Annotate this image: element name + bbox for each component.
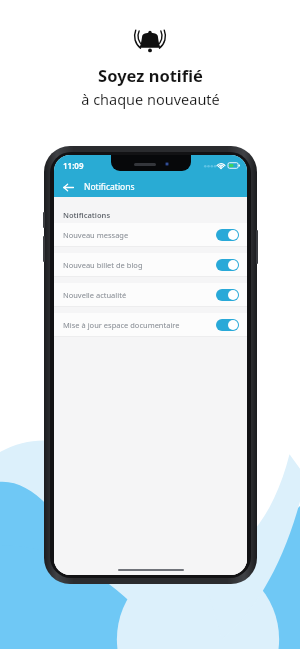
staticText: Nouveau billet de blog (63, 260, 212, 270)
button[interactable]: Back (59, 178, 77, 196)
button[interactable]: Nouveau message (54, 223, 247, 246)
button[interactable]: Toggle Nouveau billet de blog (216, 259, 239, 271)
staticText: Notifications (63, 210, 111, 220)
staticText: Soyez notifié (98, 64, 203, 86)
staticText: Mise à jour espace documentaire (63, 320, 212, 330)
staticText: à chaque nouveauté (81, 89, 220, 109)
button[interactable]: Mise à jour espace documentaire (54, 313, 247, 336)
button[interactable]: Nouvelle actualité (54, 283, 247, 306)
staticText: Notifications (84, 181, 135, 193)
staticText: Nouveau message (63, 230, 212, 240)
staticText: Nouvelle actualité (63, 290, 212, 300)
other: Notifications (130, 24, 170, 56)
button[interactable]: Nouveau billet de blog (54, 253, 247, 276)
staticText: 11:09 (63, 160, 84, 171)
button[interactable]: Toggle Nouvelle actualité (216, 289, 239, 301)
button[interactable]: Toggle Mise à jour espace documentaire (216, 319, 239, 331)
button[interactable]: Toggle Nouveau message (216, 229, 239, 241)
